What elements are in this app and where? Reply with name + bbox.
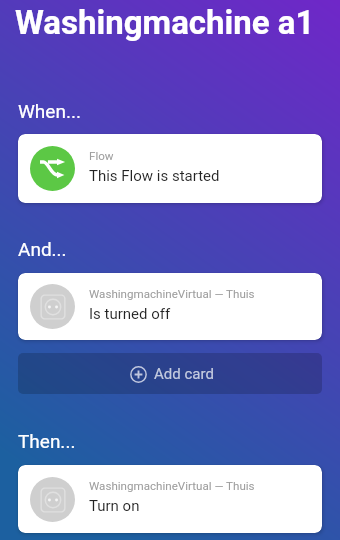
button[interactable]: Add card [18,353,322,394]
button[interactable]: Flow [18,134,322,203]
staticText: WashingmachineVirtual — Thuis [89,479,255,493]
staticText: Turn on [89,497,140,515]
staticText: Washingmachine a1 [15,3,315,42]
staticText: Then... [18,430,76,452]
button[interactable]: WashingmachineVirtual — Thuis [18,465,322,533]
staticText: And... [18,238,67,260]
staticText: Is turned off [89,305,171,323]
staticText: Add card [154,365,214,383]
button[interactable]: WashingmachineVirtual — Thuis [18,273,322,340]
staticText: This Flow is started [89,167,220,185]
staticText: Flow [89,149,114,163]
staticText: WashingmachineVirtual — Thuis [89,287,255,301]
staticText: When... [18,100,81,122]
